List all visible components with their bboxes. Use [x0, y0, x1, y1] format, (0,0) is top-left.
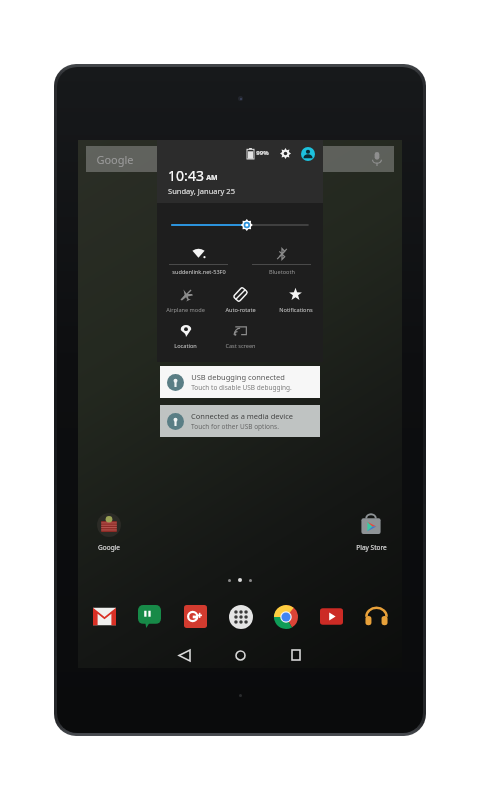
staticText: Connected as a media device	[191, 411, 293, 421]
other: Voice search	[368, 150, 386, 168]
button[interactable]: Location	[157, 320, 213, 352]
staticText: Play Store	[356, 543, 387, 552]
button[interactable]: Notifications	[268, 284, 323, 316]
staticText: Bluetooth	[269, 268, 295, 276]
button[interactable]: Home	[212, 644, 268, 666]
button[interactable]: Cast screen	[213, 320, 268, 352]
staticText: Location	[174, 342, 197, 350]
staticText: Sunday, January 25	[168, 186, 235, 196]
button[interactable]: Recents	[268, 644, 324, 666]
staticText: 10:43	[168, 166, 204, 185]
button[interactable]: Bluetooth	[240, 243, 323, 278]
staticText: AM	[206, 173, 218, 183]
button[interactable]: Google	[86, 146, 394, 172]
button[interactable]: Apps	[220, 596, 260, 636]
button[interactable]: Airplane mode	[157, 284, 213, 316]
button[interactable]: Back	[156, 644, 212, 666]
staticText: USB debugging connected	[191, 372, 285, 382]
button[interactable]: YouTube	[311, 596, 351, 636]
button[interactable]: Brightness	[157, 217, 323, 233]
button[interactable]: Gmail	[84, 596, 124, 636]
staticText: Google	[98, 543, 120, 552]
staticText: Google	[96, 152, 134, 167]
button[interactable]: Google	[88, 510, 130, 552]
staticText: Touch for other USB options.	[191, 422, 279, 431]
button[interactable]: Settings	[278, 146, 292, 160]
staticText: suddenlink.net-53F0	[172, 268, 226, 276]
button[interactable]: Play Store	[350, 510, 392, 552]
staticText: 99%	[256, 149, 269, 157]
button[interactable]: Chrome	[265, 596, 305, 636]
staticText: Airplane mode	[166, 306, 205, 314]
button[interactable]: Hangouts	[129, 596, 169, 636]
staticText: Touch to disable USB debugging.	[191, 383, 292, 392]
button[interactable]: Google Plus	[175, 596, 215, 636]
button[interactable]: Play Music	[356, 596, 396, 636]
button[interactable]: Auto-rotate	[213, 284, 268, 316]
button[interactable]: User profile	[300, 146, 315, 161]
button[interactable]: USB debugging connected	[160, 366, 320, 398]
staticText: Auto-rotate	[225, 306, 256, 314]
staticText: Cast screen	[225, 342, 256, 350]
staticText: Notifications	[279, 306, 313, 314]
button[interactable]: Wi-Fi	[157, 243, 240, 278]
button[interactable]: Connected as a media device	[160, 405, 320, 437]
